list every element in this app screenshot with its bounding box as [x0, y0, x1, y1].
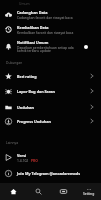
button[interactable]: Notifikasi Umum — [0, 38, 101, 55]
button[interactable]: Kembalikan Data — [0, 23, 101, 36]
button[interactable]: Lapor Bug dan Saran — [0, 84, 101, 98]
button[interactable]: Library — [51, 183, 76, 200]
staticText: Umum — [19, 1, 30, 5]
staticText: Dukungan — [6, 60, 23, 64]
staticText: Versi — [17, 153, 27, 158]
staticText: Progress Unduhan — [17, 119, 51, 124]
staticText: Lainnya — [6, 140, 19, 144]
button[interactable]: Setting — [76, 183, 101, 200]
button[interactable]: Cadangkan Data — [0, 8, 101, 21]
staticText: Join My Telegram @ancadaremods — [17, 171, 80, 176]
staticText: Unduhan — [17, 105, 34, 110]
button[interactable]: Unduhan — [0, 100, 101, 114]
staticText: Cadangkan favorit dan riwayat baca — [17, 15, 73, 19]
button[interactable]: Join My Telegram @ancadaremods — [0, 167, 101, 180]
staticText: Kembalikan favorit dan riwayat baca — [17, 30, 74, 34]
button[interactable]: Versi — [0, 150, 101, 164]
staticText: Beri rating — [17, 74, 37, 79]
button[interactable]: Home — [0, 183, 26, 200]
staticText: Dapatkan pemberitahuan setiap ada komik … — [17, 45, 81, 53]
staticText: Lapor Bug dan Saran — [17, 89, 55, 94]
button[interactable]: Search — [26, 183, 51, 200]
staticText: Cadangkan Data — [17, 10, 48, 15]
staticText: PRO — [31, 158, 38, 162]
staticText: Setting — [83, 191, 95, 196]
staticText: Notifikasi Umum — [17, 40, 49, 45]
staticText: 1.4.102 — [17, 158, 29, 162]
staticText: Kembalikan Data — [17, 25, 49, 30]
button[interactable]: Progress Unduhan — [0, 114, 101, 128]
button[interactable]: Beri rating — [0, 69, 101, 83]
